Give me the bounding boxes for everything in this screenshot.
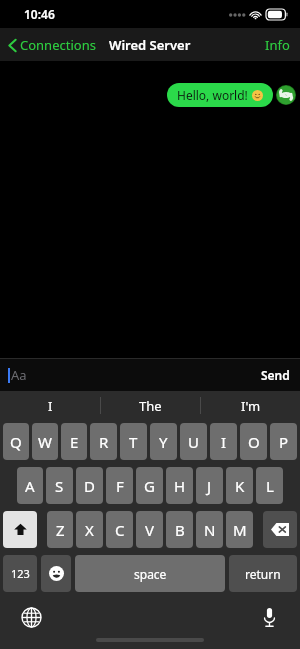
staticText: V — [145, 520, 155, 540]
button[interactable]: I'm — [201, 391, 300, 420]
button[interactable]: J — [196, 467, 223, 504]
staticText: Z — [56, 520, 65, 540]
button[interactable]: H — [166, 467, 193, 504]
button[interactable]: A — [17, 467, 43, 504]
button[interactable]: P — [270, 423, 297, 460]
staticText: F — [116, 476, 124, 496]
button[interactable]: S — [46, 467, 73, 504]
button[interactable]: V — [136, 511, 163, 548]
staticText: E — [70, 432, 79, 452]
button[interactable]: R — [90, 423, 117, 460]
other: User avatar — [276, 85, 296, 105]
button[interactable]: W — [32, 423, 58, 460]
button[interactable]: O — [240, 423, 267, 460]
staticText: H — [174, 476, 186, 496]
button[interactable]: Info — [255, 30, 300, 60]
staticText: Y — [159, 432, 168, 452]
staticText: return — [245, 566, 281, 582]
button[interactable]: K — [226, 467, 253, 504]
button[interactable]: Hello, world! — [167, 83, 273, 107]
staticText: Q — [10, 432, 22, 452]
button[interactable]: Connections — [0, 32, 102, 58]
staticText: Send — [261, 367, 290, 383]
button[interactable]: G — [136, 467, 163, 504]
button[interactable]: Y — [150, 423, 177, 460]
staticText: D — [84, 476, 95, 496]
button[interactable]: Emoji — [41, 555, 71, 592]
button[interactable]: space — [75, 555, 225, 592]
button[interactable]: U — [180, 423, 207, 460]
staticText: I — [48, 397, 53, 415]
staticText: R — [99, 432, 109, 452]
staticText: J — [207, 476, 212, 496]
staticText: P — [279, 432, 289, 452]
staticText: W — [38, 432, 52, 452]
staticText: A — [25, 476, 35, 496]
button[interactable]: Dictation — [254, 602, 284, 632]
button[interactable]: I — [0, 391, 100, 420]
button[interactable]: L — [256, 467, 283, 504]
staticText: G — [144, 476, 155, 496]
staticText: N — [204, 520, 216, 540]
staticText: space — [134, 566, 167, 582]
staticText: 123 — [11, 566, 30, 581]
button[interactable]: I — [210, 423, 237, 460]
button[interactable]: M — [226, 511, 253, 548]
button[interactable]: Backspace — [263, 511, 297, 548]
button[interactable]: E — [61, 423, 87, 460]
button[interactable]: N — [196, 511, 223, 548]
staticText: Info — [265, 36, 290, 54]
button[interactable]: C — [106, 511, 133, 548]
staticText: I'm — [241, 397, 261, 415]
button[interactable]: X — [76, 511, 103, 548]
staticText: O — [248, 432, 260, 452]
staticText: The — [139, 397, 162, 415]
staticText: 10:46 — [24, 6, 55, 22]
button[interactable]: Q — [3, 423, 29, 460]
button[interactable]: Z — [47, 511, 73, 548]
button[interactable]: Send — [251, 361, 300, 389]
button[interactable]: B — [166, 511, 193, 548]
button[interactable]: F — [106, 467, 133, 504]
staticText: I — [221, 432, 227, 452]
staticText: Connections — [20, 36, 96, 54]
staticText: M — [233, 520, 247, 540]
staticText: S — [55, 476, 64, 496]
staticText: Hello, world! — [177, 87, 248, 103]
staticText: T — [129, 432, 138, 452]
button[interactable]: 123 — [3, 555, 37, 592]
button[interactable]: D — [76, 467, 103, 504]
staticText: C — [115, 520, 125, 540]
staticText: Aa — [11, 366, 27, 384]
button[interactable]: Change keyboard — [16, 602, 46, 632]
button[interactable]: The — [101, 391, 200, 420]
staticText: K — [235, 476, 245, 496]
staticText: B — [175, 520, 185, 540]
staticText: U — [188, 432, 199, 452]
staticText: X — [85, 520, 94, 540]
button[interactable]: Shift — [3, 511, 37, 548]
button[interactable]: T — [120, 423, 147, 460]
staticText: L — [266, 476, 274, 496]
staticText: Wired Server — [109, 36, 191, 54]
button[interactable]: return — [229, 555, 297, 592]
